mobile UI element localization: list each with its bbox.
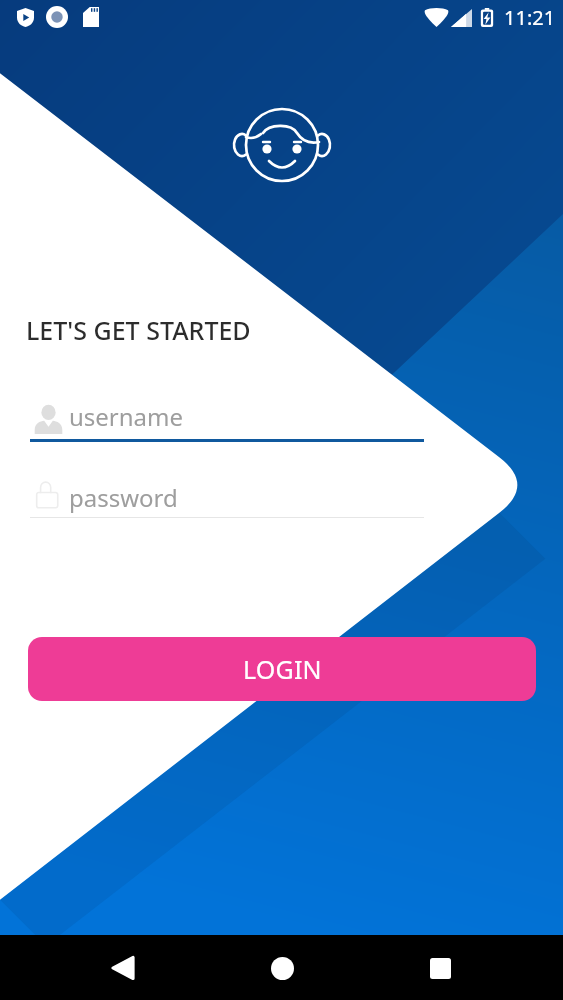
button[interactable]: Home — [251, 937, 313, 999]
button[interactable]: password — [30, 477, 426, 518]
staticText: username — [69, 400, 184, 433]
button[interactable]: LOGIN — [28, 637, 536, 701]
button[interactable]: Recent apps — [409, 937, 471, 999]
button[interactable]: Back — [92, 937, 154, 999]
staticText: 11:21 — [504, 4, 556, 31]
staticText: LET'S GET STARTED — [26, 313, 251, 347]
staticText: password — [69, 481, 178, 514]
staticText: LOGIN — [243, 652, 322, 686]
button[interactable]: username — [30, 398, 426, 442]
